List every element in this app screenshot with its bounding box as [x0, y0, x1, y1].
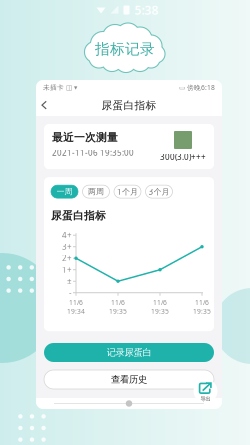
button[interactable]: 返回: [36, 95, 53, 115]
staticText: 11/6: [153, 298, 167, 307]
staticText: 5:38: [134, 2, 158, 18]
staticText: 一周: [56, 187, 72, 196]
staticText: 2021-11-06 19:35:00: [52, 147, 134, 158]
staticText: 未插卡: [43, 83, 64, 92]
staticText: 4+: [62, 230, 72, 240]
button[interactable]: 两周: [82, 185, 109, 198]
staticText: ±: [67, 276, 72, 286]
staticText: -: [69, 287, 72, 298]
staticText: 最近一次测量: [52, 131, 118, 144]
staticText: 1个月: [117, 186, 138, 197]
staticText: ◫ ▾: [64, 84, 77, 91]
staticText: 尿蛋白指标: [101, 99, 156, 112]
staticText: 2+: [62, 253, 72, 263]
staticText: 指标记录: [95, 40, 155, 58]
staticText: 两周: [88, 187, 104, 196]
button[interactable]: 查看历史: [44, 370, 214, 389]
staticText: 1+: [62, 264, 72, 275]
staticText: 3+: [62, 241, 72, 252]
staticText: 11/6: [111, 298, 125, 307]
staticText: 查看历史: [111, 374, 147, 385]
staticText: 3个月: [148, 186, 169, 197]
staticText: 记录尿蛋白: [106, 347, 151, 358]
staticText: 300(3.0)+++: [160, 151, 206, 162]
staticText: 尿蛋白指标: [51, 209, 106, 222]
button[interactable]: 记录尿蛋白: [44, 343, 214, 362]
staticText: 19:35: [151, 307, 169, 316]
staticText: 11/6: [69, 298, 83, 307]
staticText: 19:35: [109, 307, 127, 316]
button[interactable]: 1个月: [114, 185, 141, 198]
button[interactable]: 导出: [193, 379, 217, 403]
staticText: 导出: [200, 395, 210, 402]
staticText: 19:34: [67, 307, 85, 316]
staticText: 傍晚6:18: [187, 83, 215, 92]
staticText: 11/6: [195, 298, 209, 307]
button[interactable]: 3个月: [145, 185, 172, 198]
staticText: ▭: [179, 84, 187, 91]
button[interactable]: 一周: [51, 185, 78, 198]
staticText: 19:35: [193, 307, 211, 316]
